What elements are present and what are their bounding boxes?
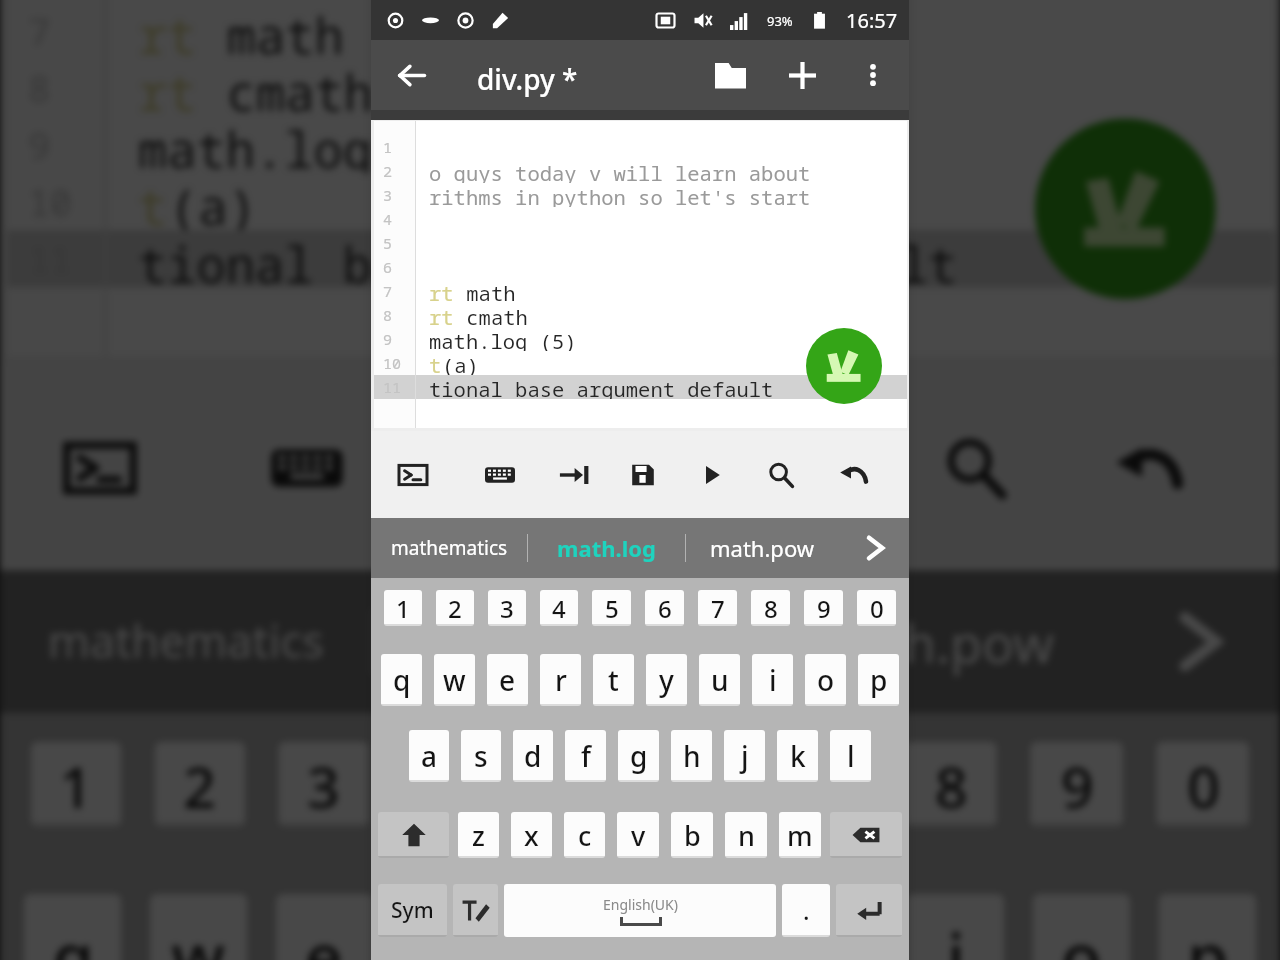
- button[interactable]: p: [858, 654, 899, 706]
- button[interactable]: k: [777, 730, 818, 782]
- button[interactable]: w: [434, 654, 475, 706]
- button[interactable]: Save: [613, 431, 673, 518]
- staticText: r: [438, 911, 466, 960]
- button[interactable]: 4: [540, 590, 578, 626]
- button[interactable]: 8: [751, 590, 790, 626]
- button[interactable]: z: [458, 812, 499, 858]
- button[interactable]: 7: [778, 742, 871, 827]
- button[interactable]: 7: [698, 590, 737, 626]
- button[interactable]: c: [564, 812, 605, 858]
- button[interactable]: p: [1159, 894, 1256, 960]
- button[interactable]: math.log: [374, 570, 747, 713]
- button[interactable]: Enter: [836, 884, 902, 937]
- button[interactable]: Keyboard: [236, 363, 378, 570]
- button[interactable]: y: [646, 654, 687, 706]
- button[interactable]: i: [752, 654, 793, 706]
- button[interactable]: Sym: [378, 884, 447, 937]
- button[interactable]: 3: [488, 590, 526, 626]
- button[interactable]: Backspace: [830, 812, 902, 858]
- staticText: rithms in python so let's start: [429, 183, 811, 207]
- button[interactable]: 9: [804, 590, 843, 626]
- button[interactable]: i: [906, 894, 1004, 960]
- staticText: c: [578, 817, 592, 854]
- button[interactable]: 6: [645, 590, 684, 626]
- button[interactable]: Terminal: [29, 363, 171, 570]
- button[interactable]: 1: [384, 590, 422, 626]
- button[interactable]: j: [724, 730, 765, 782]
- button[interactable]: 2: [155, 742, 245, 827]
- button[interactable]: 8: [904, 742, 997, 827]
- button[interactable]: s: [461, 730, 501, 782]
- button[interactable]: b: [671, 812, 713, 858]
- button[interactable]: Open folder: [696, 40, 764, 110]
- button[interactable]: More suggestions: [841, 518, 909, 578]
- button[interactable]: Run: [1035, 118, 1216, 299]
- button[interactable]: Back: [379, 40, 443, 110]
- button[interactable]: l: [830, 730, 871, 782]
- staticText: math.log (5): [138, 116, 490, 173]
- button[interactable]: q: [24, 894, 121, 960]
- button[interactable]: v: [617, 812, 659, 858]
- button[interactable]: r: [402, 894, 500, 960]
- button[interactable]: Save: [576, 363, 718, 570]
- staticText: v: [631, 817, 646, 854]
- button[interactable]: Undo: [1078, 363, 1220, 570]
- button[interactable]: More suggestions: [1118, 570, 1280, 713]
- button[interactable]: math.pow: [686, 518, 838, 578]
- button[interactable]: 9: [1030, 742, 1123, 827]
- button[interactable]: Change input: [453, 884, 498, 937]
- button[interactable]: h: [671, 730, 712, 782]
- button[interactable]: math.log: [528, 518, 685, 578]
- button[interactable]: e: [487, 654, 528, 706]
- button[interactable]: Terminal: [383, 431, 443, 518]
- button[interactable]: x: [511, 812, 552, 858]
- button[interactable]: Undo: [824, 431, 884, 518]
- staticText: math.log (5): [429, 327, 577, 351]
- button[interactable]: 4: [402, 742, 492, 827]
- button[interactable]: Space: [504, 884, 776, 937]
- button[interactable]: New file: [768, 40, 836, 110]
- button[interactable]: math.pow: [749, 570, 1111, 713]
- button[interactable]: q: [381, 654, 422, 706]
- button[interactable]: Indent: [412, 363, 554, 570]
- staticText: cmath: [454, 303, 528, 327]
- button[interactable]: m: [779, 812, 821, 858]
- button[interactable]: 0: [857, 590, 896, 626]
- button[interactable]: f: [565, 730, 606, 782]
- button[interactable]: t: [593, 654, 634, 706]
- button[interactable]: Find: [751, 431, 811, 518]
- button[interactable]: u: [780, 894, 878, 960]
- button[interactable]: r: [540, 654, 581, 706]
- button[interactable]: More options: [845, 40, 901, 110]
- button[interactable]: n: [725, 812, 767, 858]
- button[interactable]: mathematics: [0, 570, 371, 713]
- button[interactable]: o: [1032, 894, 1130, 960]
- staticText: q: [393, 661, 411, 699]
- button[interactable]: e: [276, 894, 373, 960]
- button[interactable]: Indent: [544, 431, 604, 518]
- button[interactable]: 5: [526, 742, 619, 827]
- button[interactable]: Find: [904, 363, 1047, 570]
- button[interactable]: Keyboard: [470, 431, 530, 518]
- button[interactable]: w: [150, 894, 247, 960]
- button[interactable]: 1: [31, 742, 121, 827]
- button[interactable]: 2: [436, 590, 474, 626]
- button[interactable]: y: [654, 894, 752, 960]
- button[interactable]: d: [513, 730, 553, 782]
- button[interactable]: Run: [740, 363, 883, 570]
- button[interactable]: Run: [682, 431, 742, 518]
- button[interactable]: 3: [278, 742, 369, 827]
- button[interactable]: Run: [806, 328, 882, 404]
- button[interactable]: 5: [592, 590, 631, 626]
- button[interactable]: g: [618, 730, 659, 782]
- button[interactable]: .: [782, 884, 830, 937]
- button[interactable]: 6: [652, 742, 745, 827]
- button[interactable]: t: [528, 894, 626, 960]
- button[interactable]: 0: [1156, 742, 1249, 827]
- staticText: 16:57: [846, 7, 898, 34]
- button[interactable]: o: [805, 654, 846, 706]
- button[interactable]: Shift: [378, 812, 449, 858]
- button[interactable]: a: [409, 730, 449, 782]
- button[interactable]: mathematics: [371, 518, 527, 578]
- button[interactable]: u: [699, 654, 740, 706]
